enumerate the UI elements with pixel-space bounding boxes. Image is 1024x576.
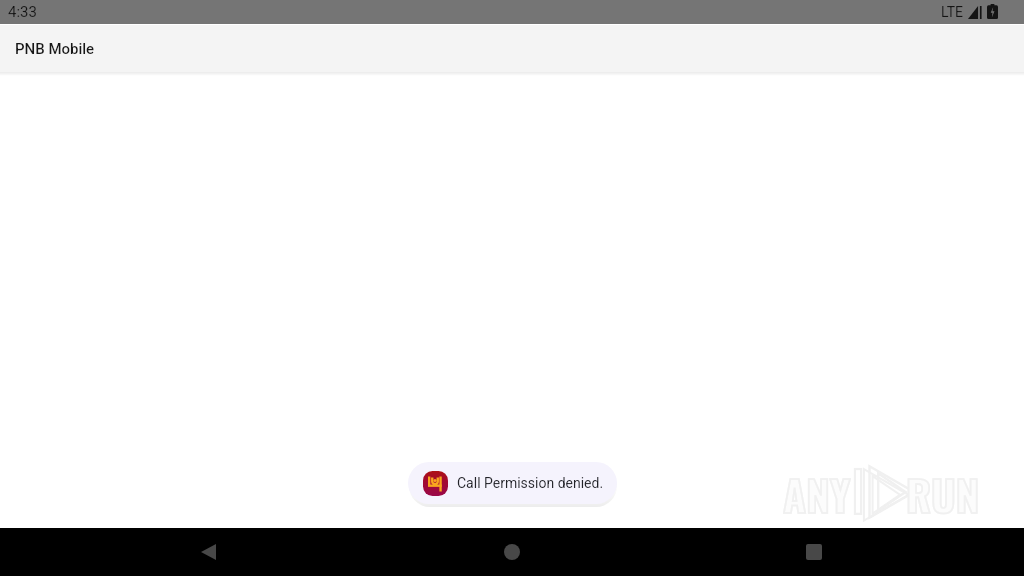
staticText: LTE [941, 4, 963, 20]
staticText: PNB Mobile [15, 40, 95, 58]
button[interactable]: Back [184, 528, 232, 576]
button[interactable]: Recent apps [790, 528, 838, 576]
staticText: ANY [783, 463, 851, 519]
staticText: 4:33 [8, 3, 37, 21]
button[interactable]: Call Permission denied. [408, 462, 617, 504]
staticText: RUN [906, 463, 980, 519]
button[interactable]: Home [488, 528, 536, 576]
staticText: Call Permission denied. [457, 475, 604, 491]
staticText: RUN [906, 463, 980, 519]
staticText: ANY [783, 463, 851, 519]
